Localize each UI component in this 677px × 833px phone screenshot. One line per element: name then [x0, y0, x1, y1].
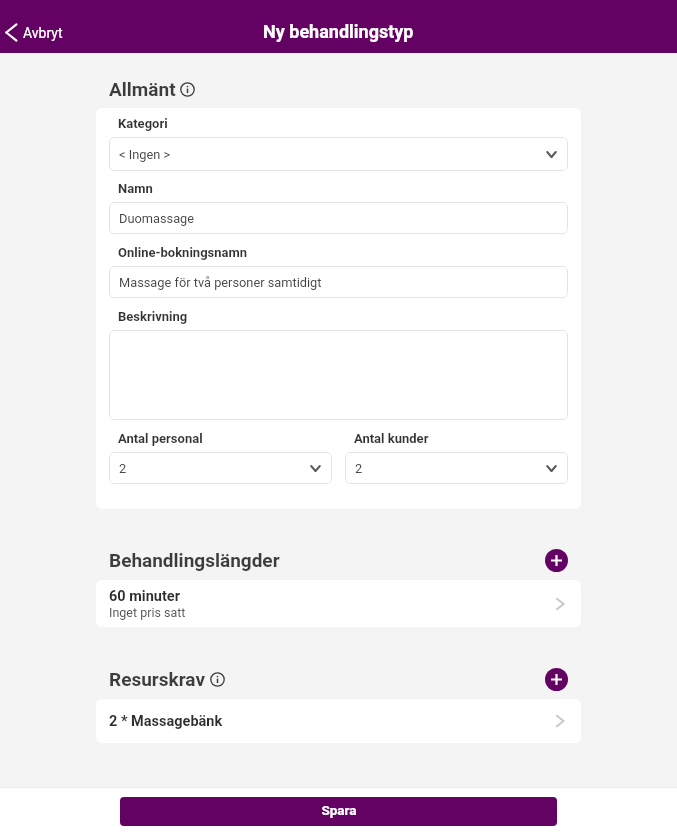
button[interactable]: 2 — [109, 452, 332, 484]
staticText: Inget pris satt — [109, 605, 186, 620]
button[interactable]: Lägg till — [545, 549, 568, 572]
staticText: 2 — [355, 461, 363, 476]
button[interactable]: < Ingen > — [109, 137, 568, 171]
button[interactable]: Duomassage — [109, 202, 568, 234]
staticText: Massage för två personer samtidigt — [119, 275, 322, 290]
staticText: < Ingen > — [119, 147, 171, 162]
staticText: 60 minuter — [109, 588, 180, 605]
staticText: Kategori — [118, 116, 168, 131]
staticText: Beskrivning — [118, 309, 188, 324]
button[interactable]: Spara — [120, 797, 557, 826]
button[interactable]: Avbryt — [5, 12, 63, 53]
button[interactable]: 60 minuter — [96, 580, 581, 627]
staticText: Namn — [118, 181, 153, 196]
button[interactable]: Massage för två personer samtidigt — [109, 266, 568, 298]
staticText: Duomassage — [119, 211, 195, 226]
button[interactable] — [109, 330, 568, 420]
staticText: 2 — [119, 461, 127, 476]
staticText: Antal kunder — [354, 431, 429, 446]
staticText: Antal personal — [118, 431, 203, 446]
staticText: Behandlingslängder — [109, 549, 280, 571]
staticText: Online-bokningsnamn — [118, 245, 248, 260]
staticText: Avbryt — [23, 25, 63, 41]
button[interactable]: 2 * Massagebänk — [96, 699, 581, 743]
button[interactable]: Lägg till — [545, 668, 568, 691]
staticText: Spara — [321, 802, 357, 818]
button[interactable]: 2 — [345, 452, 568, 484]
staticText: Allmänt — [109, 78, 176, 100]
staticText: Resurskrav — [109, 668, 206, 690]
staticText: Ny behandlingstyp — [263, 21, 414, 42]
staticText: 2 * Massagebänk — [109, 713, 223, 730]
